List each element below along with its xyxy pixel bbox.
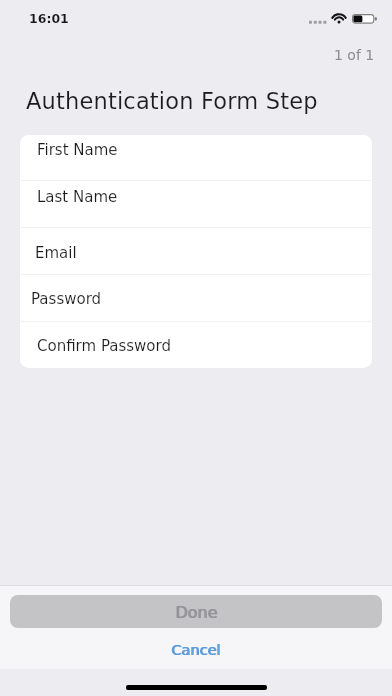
other: Home indicator [126, 685, 267, 690]
button[interactable]: Cancel [0, 637, 392, 663]
staticText: Done [176, 603, 219, 622]
staticText: 16:01 [29, 11, 69, 26]
button[interactable]: Password [20, 275, 372, 321]
staticText: First Name [37, 141, 118, 158]
staticText: Authentication Form Step [26, 88, 318, 114]
button[interactable]: First Name [20, 135, 372, 180]
staticText: Cancel [172, 642, 222, 659]
staticText: Last Name [37, 188, 118, 205]
other: Battery 45 percent [352, 13, 378, 24]
button[interactable]: Done [10, 595, 382, 628]
staticText: Email [35, 244, 77, 261]
button[interactable]: Email [20, 228, 372, 274]
staticText: Password [31, 290, 102, 307]
other: Cellular signal [309, 13, 327, 24]
other: Wi-Fi [331, 13, 347, 24]
staticText: Cancel [171, 642, 221, 659]
button[interactable]: Confirm Password [20, 322, 372, 368]
staticText: 1 of 1 [334, 47, 375, 63]
staticText: Confirm Password [37, 337, 171, 354]
button[interactable]: Last Name [20, 181, 372, 227]
staticText: Done [175, 603, 218, 622]
